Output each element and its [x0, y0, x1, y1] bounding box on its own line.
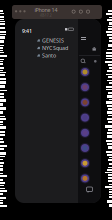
- button[interactable]: Santo: [15, 19, 87, 59]
- staticText: iPhone 14: [34, 6, 57, 14]
- staticText: Santo: [42, 52, 56, 59]
- staticText: NYC Squad: [42, 44, 68, 52]
- button[interactable]: GENESIS: [15, 19, 87, 44]
- staticText: GENESIS: [42, 37, 64, 44]
- button[interactable]: NYC Squad: [15, 19, 87, 51]
- staticText: 9:41: [22, 27, 32, 35]
- staticText: iOS 17.2: [40, 14, 52, 17]
